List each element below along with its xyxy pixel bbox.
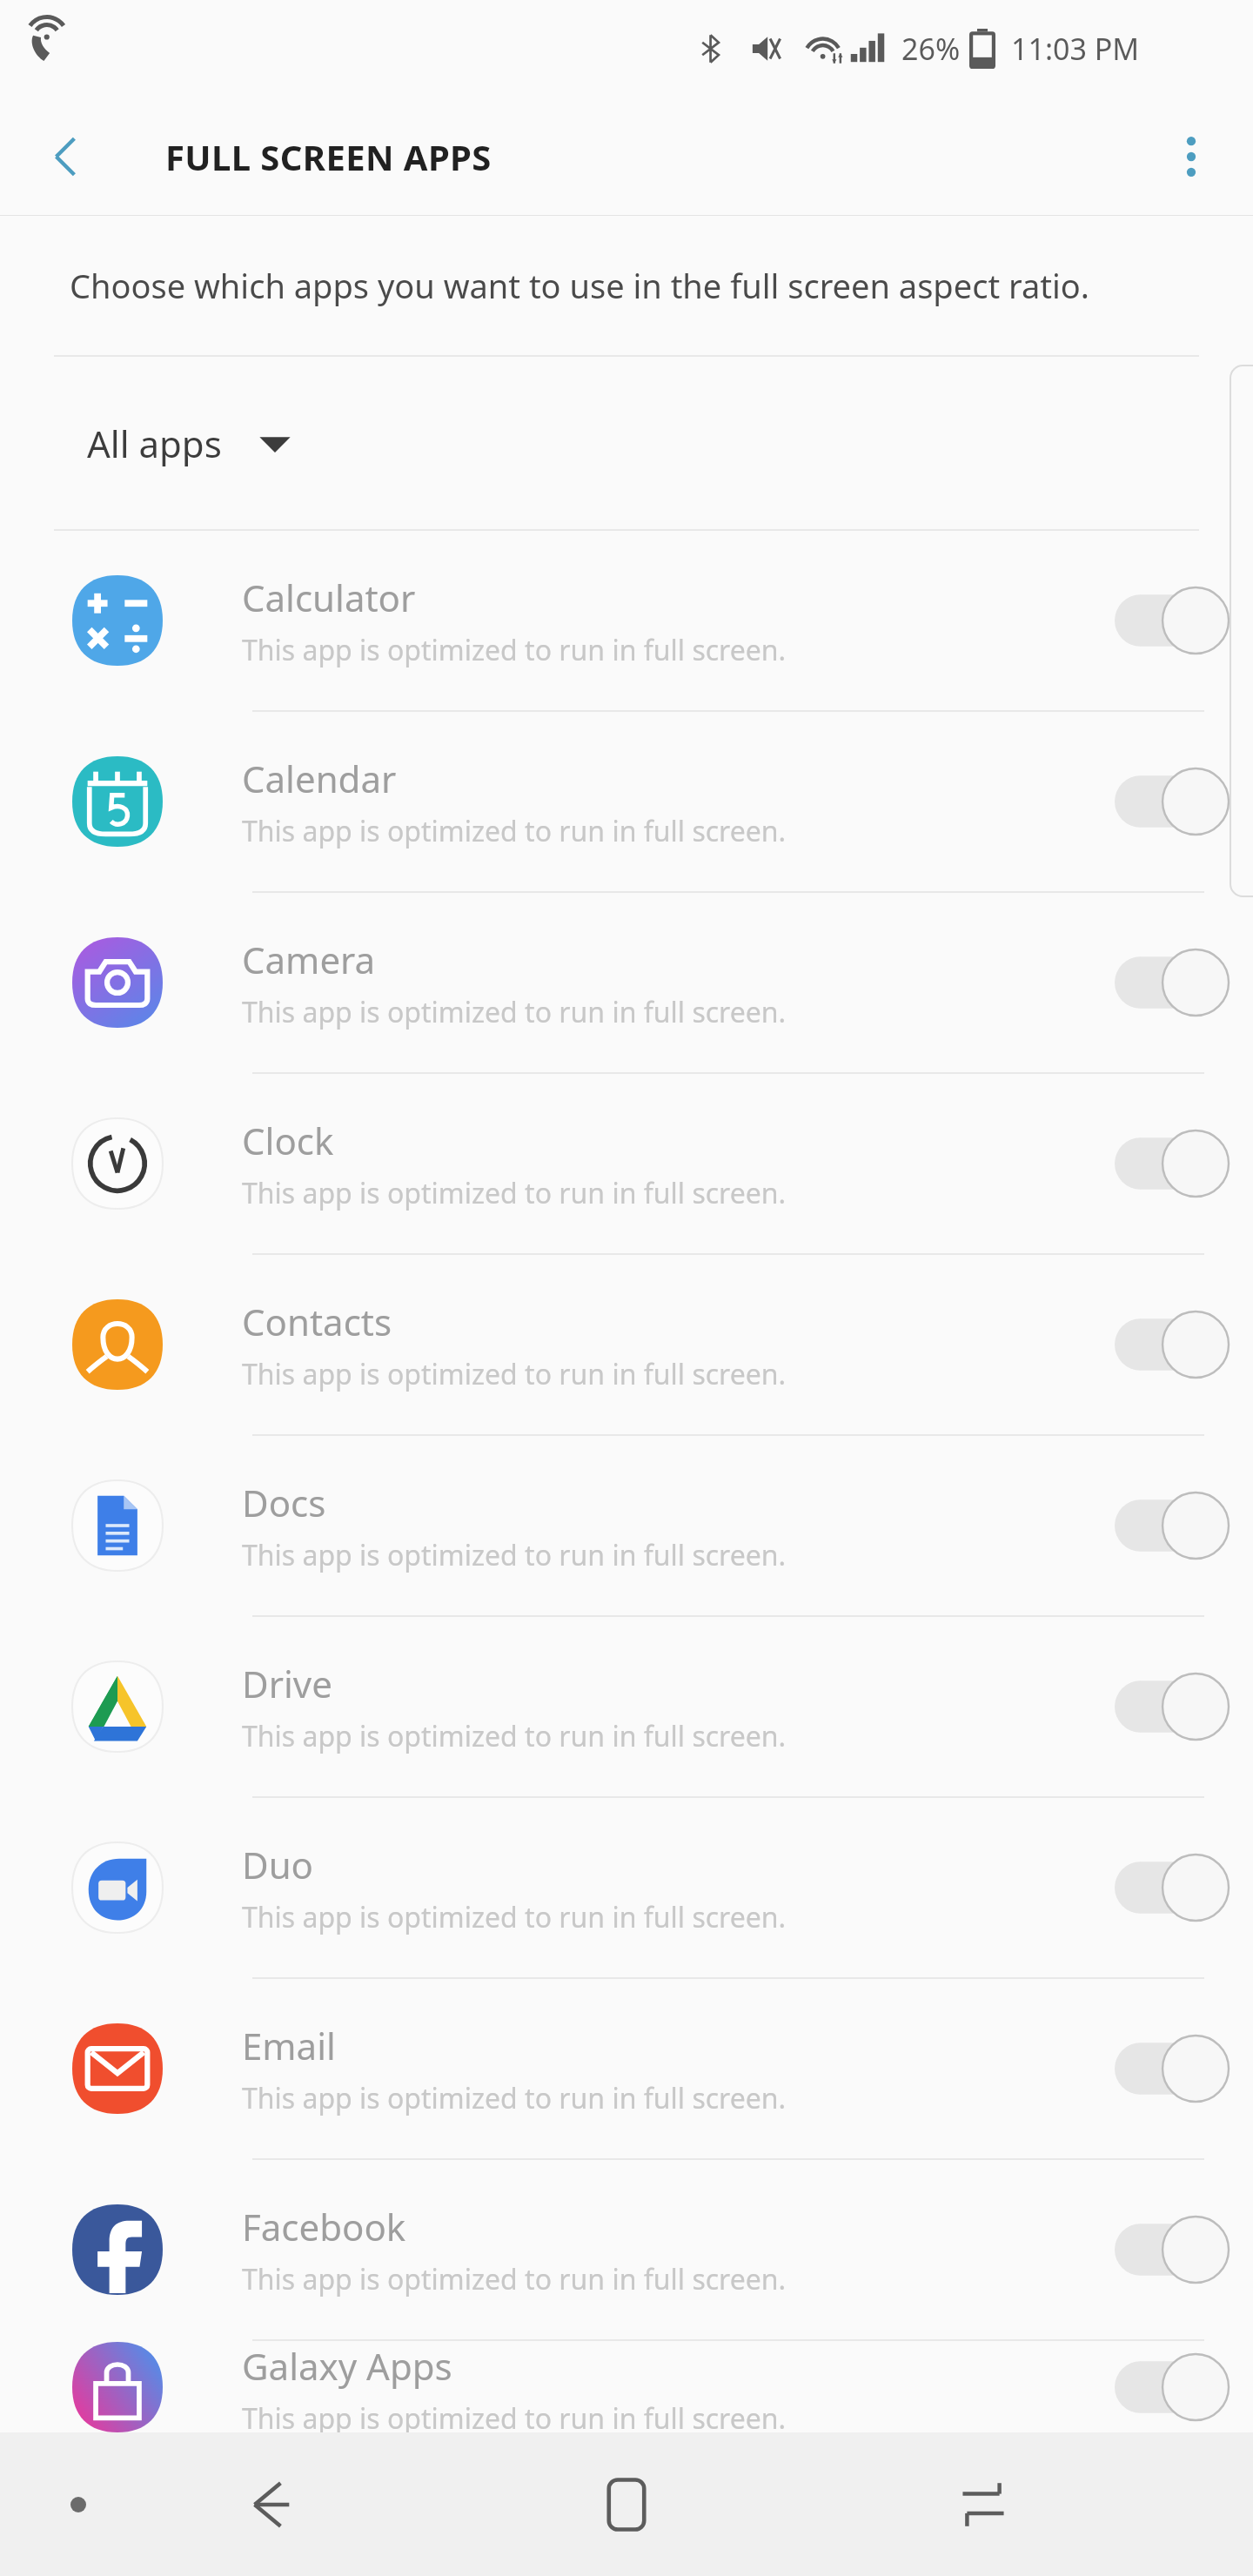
staticText: All apps [87, 419, 222, 468]
button[interactable]: Toggle Duo [1088, 1831, 1253, 1944]
button[interactable]: Clock [0, 1074, 1253, 1253]
staticText: This app is optimized to run in full scr… [242, 2399, 787, 2432]
staticText: This app is optimized to run in full scr… [242, 812, 787, 850]
button[interactable]: Back [183, 2432, 357, 2576]
staticText: Contacts [242, 1297, 392, 1346]
button[interactable]: Calculator [0, 531, 1253, 710]
button[interactable]: Toggle Calendar [1088, 745, 1253, 858]
staticText: Duo [242, 1840, 314, 1889]
button[interactable]: More options [1143, 109, 1239, 205]
staticText: 11:03 PM [1011, 29, 1140, 69]
staticText: Drive [242, 1659, 332, 1708]
button[interactable]: Keyboard indicator [44, 2470, 113, 2539]
button[interactable]: Toggle Drive [1088, 1650, 1253, 1763]
staticText: This app is optimized to run in full scr… [242, 2079, 787, 2117]
button[interactable]: Toggle Docs [1088, 1469, 1253, 1582]
button[interactable]: All apps [0, 357, 1253, 529]
staticText: Calendar [242, 754, 397, 803]
staticText: Email [242, 2021, 336, 2070]
button[interactable]: Calendar [0, 712, 1253, 891]
button[interactable]: Home [539, 2432, 714, 2576]
staticText: 26% [901, 29, 961, 69]
staticText: This app is optimized to run in full scr… [242, 631, 787, 669]
staticText: Facebook [242, 2202, 406, 2251]
button[interactable]: Duo [0, 1798, 1253, 1977]
staticText: This app is optimized to run in full scr… [242, 1174, 787, 1212]
button[interactable]: Toggle Contacts [1088, 1288, 1253, 1401]
button[interactable]: Toggle Galaxy Apps [1088, 2341, 1253, 2432]
button[interactable]: Camera [0, 893, 1253, 1072]
staticText: Clock [242, 1116, 334, 1165]
staticText: This app is optimized to run in full scr… [242, 2260, 787, 2298]
button[interactable]: Docs [0, 1436, 1253, 1615]
button[interactable]: Contacts [0, 1255, 1253, 1434]
staticText: FULL SCREEN APPS [165, 133, 492, 180]
button[interactable]: Toggle Clock [1088, 1107, 1253, 1220]
staticText: Docs [242, 1478, 326, 1527]
button[interactable]: Galaxy Apps [0, 2341, 1253, 2432]
button[interactable]: Toggle Calculator [1088, 564, 1253, 677]
staticText: This app is optimized to run in full scr… [242, 1717, 787, 1755]
staticText: Galaxy Apps [242, 2341, 452, 2391]
staticText: This app is optimized to run in full scr… [242, 1355, 787, 1393]
staticText: This app is optimized to run in full scr… [242, 993, 787, 1031]
staticText: This app is optimized to run in full scr… [242, 1898, 787, 1936]
button[interactable]: Recent apps [896, 2432, 1070, 2576]
button[interactable]: Back [17, 109, 113, 205]
button[interactable]: Toggle Facebook [1088, 2193, 1253, 2306]
staticText: Camera [242, 935, 376, 984]
button[interactable]: Toggle Camera [1088, 926, 1253, 1039]
button[interactable]: Email [0, 1979, 1253, 2158]
button[interactable]: Toggle Email [1088, 2012, 1253, 2125]
button[interactable]: Facebook [0, 2160, 1253, 2339]
staticText: Choose which apps you want to use in the… [70, 263, 1089, 308]
staticText: Calculator [242, 573, 416, 622]
button[interactable]: Drive [0, 1617, 1253, 1796]
staticText: This app is optimized to run in full scr… [242, 1536, 787, 1574]
